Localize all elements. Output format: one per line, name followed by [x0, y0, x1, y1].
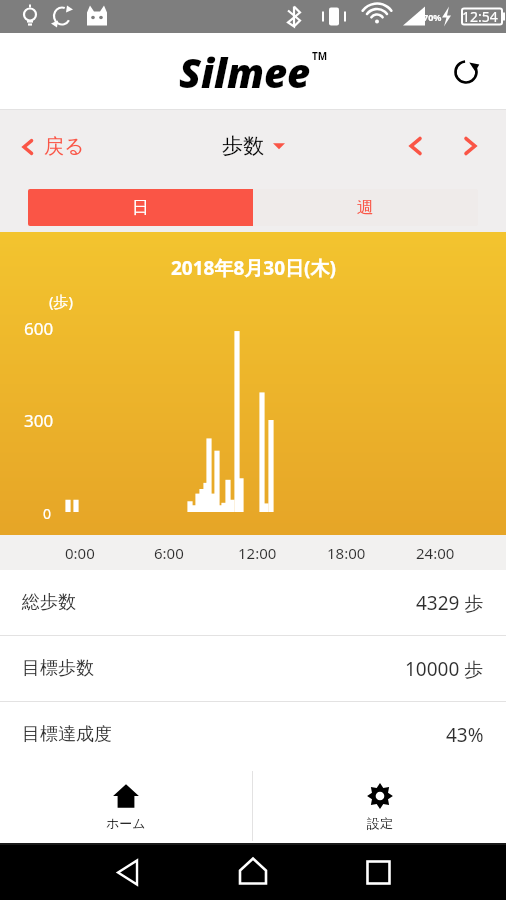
button[interactable]: 目標歩数 — [0, 636, 506, 701]
staticText: 0 — [43, 504, 52, 523]
staticText: 12:54 — [462, 7, 498, 26]
staticText: ホーム — [106, 815, 146, 831]
staticText: 戻る — [44, 134, 85, 159]
staticText: TM — [312, 49, 328, 63]
staticText: 4329 歩 — [416, 590, 484, 616]
staticText: 2018年8月30日(木) — [171, 255, 336, 281]
staticText: 18:00 — [327, 543, 366, 563]
staticText: 日 — [132, 197, 149, 218]
staticText: 10000 歩 — [405, 656, 484, 682]
staticText: 43% — [446, 722, 484, 748]
staticText: Silmee — [179, 45, 311, 99]
staticText: 6:00 — [154, 543, 184, 563]
staticText: 600 — [24, 317, 54, 340]
button[interactable]: 週 — [253, 189, 478, 226]
staticText: 週 — [357, 197, 374, 218]
staticText: 24:00 — [416, 543, 455, 563]
staticText: 300 — [24, 409, 54, 432]
button[interactable]: 戻る — [18, 134, 85, 159]
button[interactable]: Next — [450, 126, 490, 166]
staticText: 設定 — [367, 815, 393, 831]
button[interactable]: 設定 — [253, 767, 506, 845]
staticText: (歩) — [49, 291, 74, 311]
button[interactable]: Previous — [396, 126, 436, 166]
staticText: 総歩数 — [22, 591, 76, 614]
button[interactable]: Refresh — [444, 50, 488, 94]
button[interactable]: ホーム — [0, 767, 252, 845]
button[interactable]: 総歩数 — [0, 570, 506, 635]
staticText: 0:00 — [65, 543, 95, 563]
staticText: 12:00 — [238, 543, 277, 563]
button[interactable]: 目標達成度 — [0, 702, 506, 767]
staticText: 70% — [423, 11, 442, 23]
staticText: 目標歩数 — [22, 657, 94, 680]
button[interactable]: 日 — [28, 189, 253, 226]
staticText: 目標達成度 — [22, 723, 112, 746]
button[interactable]: 歩数 — [222, 133, 285, 159]
staticText: 歩数 — [222, 133, 264, 159]
